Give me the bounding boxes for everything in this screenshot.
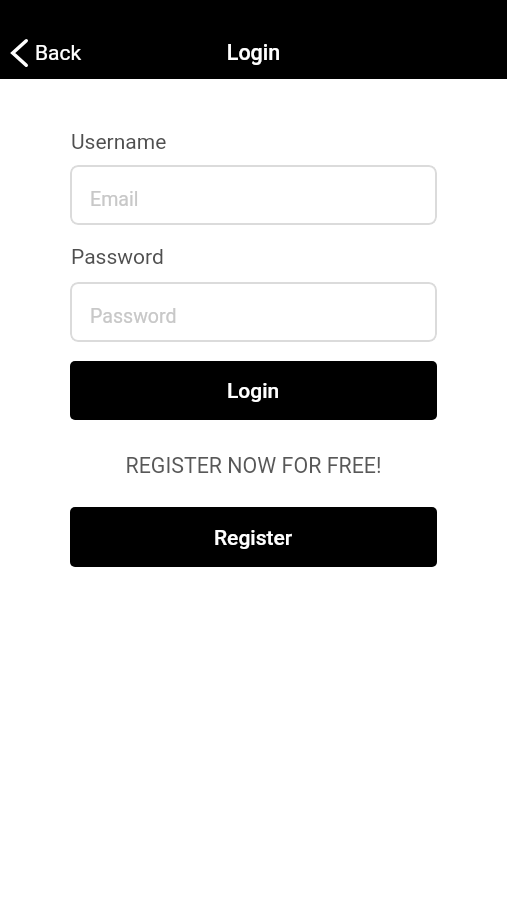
staticText: REGISTER NOW FOR FREE! [0,453,507,478]
staticText: Email [90,188,139,211]
staticText: Password [90,305,177,328]
button[interactable]: Password [70,282,437,342]
staticText: Username [71,130,167,155]
staticText: Login [227,379,280,404]
staticText: Back [35,41,82,66]
staticText: Password [71,245,164,270]
button[interactable]: Login [70,361,437,420]
button[interactable]: Email [70,165,437,225]
button[interactable]: Back [5,34,90,72]
staticText: Login [0,40,507,65]
button[interactable]: Register [70,507,437,567]
staticText: Register [214,526,293,551]
